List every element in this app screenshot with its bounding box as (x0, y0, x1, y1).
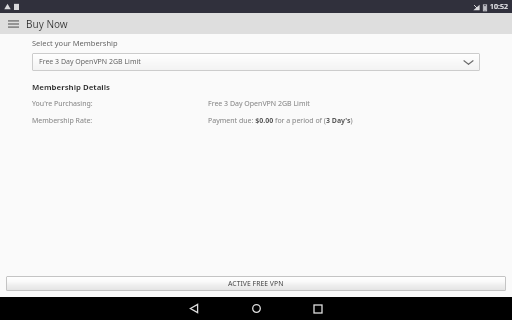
staticText: ACTIVE FREE VPN (228, 279, 284, 288)
staticText: Select your Membership (32, 38, 118, 48)
staticText: You're Purchasing: (32, 99, 93, 109)
staticText: Buy Now (26, 17, 68, 31)
staticText: Free 3 Day OpenVPN 2GB Limit (39, 57, 464, 67)
button[interactable]: ACTIVE FREE VPN (6, 276, 506, 291)
button[interactable]: Back (163, 297, 225, 320)
button[interactable]: Open navigation menu (0, 13, 26, 34)
button[interactable]: Recent apps (287, 297, 349, 320)
button[interactable]: Home (225, 297, 287, 320)
button[interactable]: Free 3 Day OpenVPN 2GB Limit (32, 53, 480, 71)
staticText: Payment due: $0.00 for a period of (3 Da… (208, 116, 353, 126)
staticText: Free 3 Day OpenVPN 2GB Limit (208, 99, 310, 109)
staticText: Membership Rate: (32, 116, 93, 126)
staticText: 10:52 (490, 2, 508, 12)
staticText: Membership Details (32, 82, 110, 93)
